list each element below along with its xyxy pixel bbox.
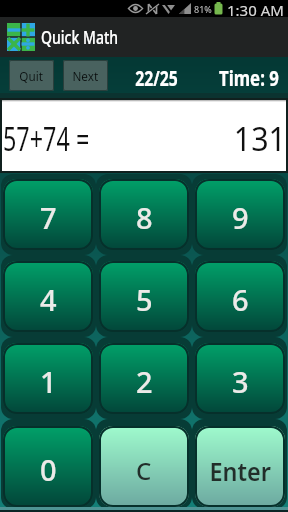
staticText: 57+74 = bbox=[3, 117, 90, 161]
button[interactable]: 8 bbox=[99, 179, 189, 250]
staticText: 8 bbox=[136, 198, 153, 237]
button[interactable]: 0 bbox=[3, 426, 93, 507]
staticText: Enter bbox=[209, 453, 271, 488]
staticText: 2 bbox=[136, 362, 153, 401]
button[interactable]: Enter bbox=[195, 426, 285, 507]
button[interactable]: 5 bbox=[99, 261, 189, 332]
staticText: Time: 9 bbox=[219, 64, 279, 93]
staticText: 1 bbox=[40, 362, 57, 401]
button[interactable]: 1 bbox=[3, 343, 93, 414]
button[interactable]: 9 bbox=[195, 179, 285, 250]
staticText: Next bbox=[72, 67, 98, 85]
button[interactable]: 6 bbox=[195, 261, 285, 332]
button[interactable]: 4 bbox=[3, 261, 93, 332]
button[interactable]: 7 bbox=[3, 179, 93, 250]
button[interactable]: Quit bbox=[9, 60, 54, 91]
button[interactable]: Next bbox=[63, 60, 108, 91]
staticText: Quick Math bbox=[41, 25, 118, 50]
staticText: 1:30 AM bbox=[227, 0, 284, 17]
staticText: C bbox=[136, 454, 152, 487]
staticText: Quit bbox=[19, 67, 44, 85]
staticText: 9 bbox=[232, 198, 249, 237]
staticText: 131 bbox=[234, 117, 286, 161]
button[interactable]: C bbox=[99, 426, 189, 507]
staticText: 7 bbox=[40, 198, 57, 237]
button[interactable]: 3 bbox=[195, 343, 285, 414]
staticText: 3 bbox=[232, 362, 249, 401]
staticText: 0 bbox=[40, 450, 57, 489]
staticText: 4 bbox=[40, 280, 57, 319]
staticText: 6 bbox=[232, 280, 249, 319]
staticText: 5 bbox=[136, 280, 153, 319]
staticText: 22/25 bbox=[135, 64, 178, 93]
staticText: 81% bbox=[194, 3, 212, 15]
button[interactable]: 2 bbox=[99, 343, 189, 414]
